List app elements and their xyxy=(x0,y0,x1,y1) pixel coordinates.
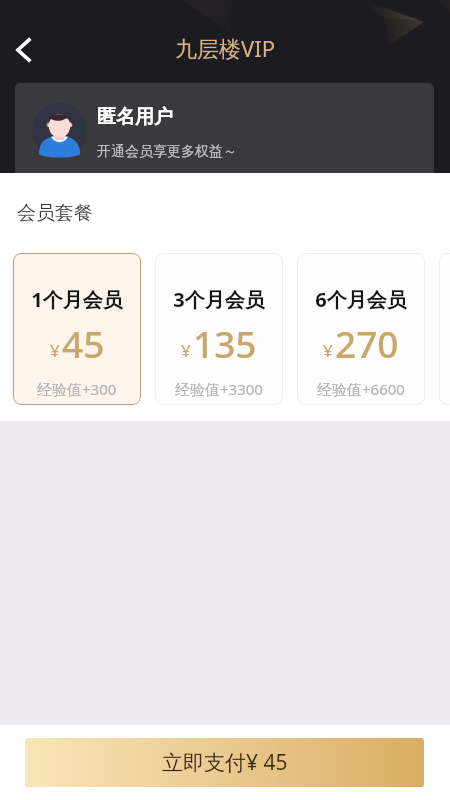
button[interactable]: 立即支付¥ 45 xyxy=(25,738,424,787)
staticText: ¥ xyxy=(50,339,60,362)
staticText: 会员套餐 xyxy=(17,201,93,225)
staticText: ¥ xyxy=(323,339,333,362)
staticText: 立即支付¥ 45 xyxy=(162,748,288,777)
staticText: 经验值+3300 xyxy=(175,379,263,399)
staticText: ¥ xyxy=(181,339,191,362)
staticText: 经验值+6600 xyxy=(317,379,405,399)
button[interactable]: 3个月会员 xyxy=(155,253,283,405)
button[interactable]: Back xyxy=(2,28,46,72)
staticText: 6个月会员 xyxy=(315,286,407,313)
staticText: 45 xyxy=(62,318,105,368)
staticText: 匿名用户 xyxy=(97,105,173,129)
staticText: 九层楼VIP xyxy=(175,33,275,63)
staticText: 270 xyxy=(335,318,399,368)
staticText: 开通会员享更多权益～ xyxy=(97,143,237,161)
staticText: 经验值+300 xyxy=(37,379,117,399)
button[interactable]: 匿名用户 xyxy=(15,83,434,173)
staticText: 135 xyxy=(193,318,257,368)
staticText: 1个月会员 xyxy=(31,286,123,313)
staticText: 3个月会员 xyxy=(173,286,265,313)
button[interactable]: 1个月会员 xyxy=(13,253,141,405)
button[interactable]: 6个月会员 xyxy=(297,253,425,405)
button[interactable]: 12个月会员 xyxy=(439,253,450,405)
